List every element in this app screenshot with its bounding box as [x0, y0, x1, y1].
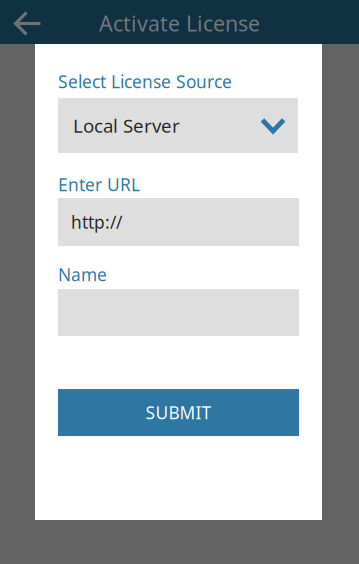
staticText: Activate License [99, 9, 260, 37]
staticText: Select License Source [58, 70, 232, 93]
staticText: SUBMIT [145, 401, 211, 424]
staticText: Local Server [73, 113, 180, 138]
button[interactable]: Local Server [35, 98, 298, 153]
staticText: Enter URL [58, 173, 140, 196]
button[interactable]: Back [0, 0, 54, 44]
staticText: Name [58, 263, 107, 286]
staticText: http:// [71, 210, 122, 233]
button[interactable]: SUBMIT [35, 389, 299, 436]
button[interactable]: http:// [35, 198, 299, 246]
button[interactable]: Name [35, 289, 299, 336]
